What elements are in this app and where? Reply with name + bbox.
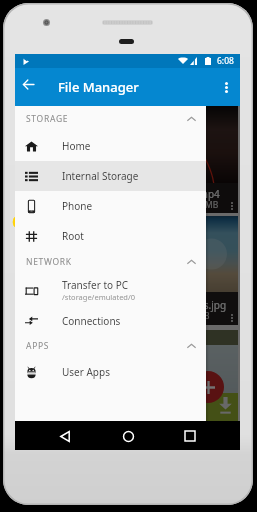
staticText: ostriches.jpg <box>166 298 227 312</box>
button[interactable]: Collapse STORAGE <box>183 111 199 127</box>
button[interactable]: More options <box>214 75 238 99</box>
staticText: User Apps <box>62 365 110 379</box>
staticText: VID_20180612.mp4 <box>129 187 220 201</box>
staticText: NETWORK <box>26 256 72 268</box>
staticText: Phone <box>62 199 93 213</box>
button[interactable]: Root <box>15 221 206 251</box>
button[interactable]: Connections <box>15 307 206 335</box>
staticText: Home <box>62 139 91 153</box>
staticText: Root <box>62 229 84 243</box>
button[interactable]: Collapse NETWORK <box>183 254 199 270</box>
staticText: File Manager <box>58 78 139 96</box>
staticText: Internal Storage <box>62 169 139 183</box>
button[interactable]: OOS <box>17 216 238 325</box>
button[interactable]: Phone <box>15 191 206 221</box>
staticText: 24.7 MB <box>186 199 219 211</box>
button[interactable]: File options <box>226 200 238 212</box>
button[interactable]: Home <box>115 423 141 449</box>
button[interactable]: Back <box>17 72 40 96</box>
staticText: STORAGE <box>26 113 69 125</box>
staticText: /storage/emulated/0 <box>62 292 136 302</box>
staticText: 2.1 MB <box>182 310 210 322</box>
staticText: Connections <box>62 314 121 328</box>
button[interactable]: Back <box>52 423 78 449</box>
button[interactable]: Recents <box>177 423 203 449</box>
button[interactable]: User Apps <box>15 357 206 387</box>
staticText: APPS <box>26 340 50 352</box>
staticText: 6:08 <box>217 55 234 67</box>
button[interactable] <box>17 330 238 421</box>
button[interactable]: Collapse APPS <box>183 338 199 354</box>
button[interactable]: File options <box>226 312 238 324</box>
button[interactable]: Transfer to PC <box>15 273 206 307</box>
button[interactable]: Home <box>15 131 206 161</box>
button[interactable]: VID_20180612.mp4 <box>17 106 238 213</box>
button[interactable]: Add <box>192 371 224 403</box>
staticText: OOS <box>12 211 47 233</box>
staticText: Transfer to PC <box>62 278 129 292</box>
button[interactable]: Internal Storage <box>15 161 206 191</box>
